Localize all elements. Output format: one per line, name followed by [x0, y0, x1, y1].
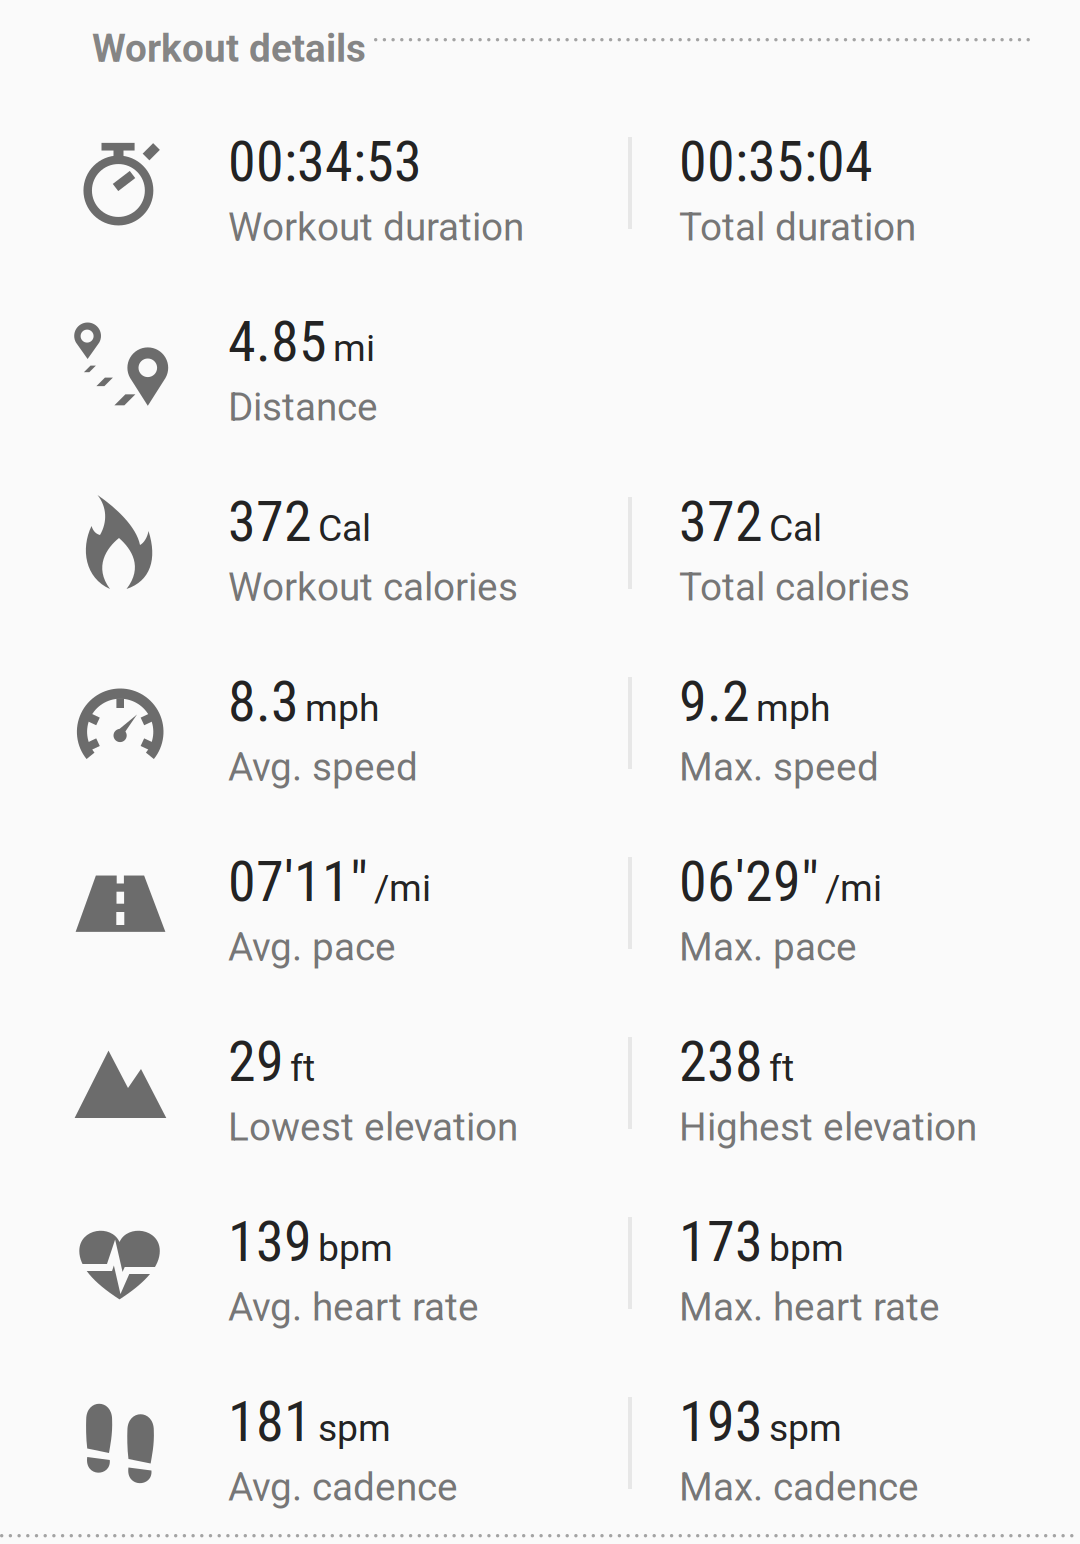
button[interactable]: 372: [0, 0, 518, 610]
staticText: Max. cadence: [679, 1465, 919, 1510]
staticText: 00:35:04: [679, 129, 873, 195]
staticText: 238: [679, 1029, 763, 1095]
staticText: 372: [228, 489, 312, 555]
staticText: 29: [228, 1029, 284, 1095]
staticText: ft: [290, 1046, 315, 1090]
staticText: bpm: [318, 1226, 393, 1270]
staticText: Cal: [769, 506, 822, 550]
button[interactable]: 193: [0, 0, 919, 1510]
button[interactable]: 29: [0, 0, 518, 1150]
button[interactable]: 181: [0, 0, 458, 1510]
button[interactable]: 06'29": [0, 0, 882, 970]
staticText: Avg. cadence: [228, 1465, 458, 1510]
button[interactable]: 238: [0, 0, 977, 1150]
staticText: mi: [333, 326, 375, 370]
staticText: Total calories: [679, 565, 910, 610]
button[interactable]: 173: [0, 0, 940, 1330]
staticText: Max. speed: [679, 745, 879, 790]
button[interactable]: 00:35:04: [0, 0, 916, 250]
staticText: 00:34:53: [228, 129, 422, 195]
staticText: 4.85: [228, 309, 327, 375]
staticText: Max. pace: [679, 925, 857, 970]
staticText: Avg. pace: [228, 925, 396, 970]
staticText: Avg. heart rate: [228, 1285, 479, 1330]
staticText: Workout calories: [228, 565, 518, 610]
staticText: Distance: [228, 385, 378, 430]
button[interactable]: 4.85: [0, 0, 378, 430]
staticText: 07'11": [228, 849, 368, 915]
button[interactable]: 9.2: [0, 0, 879, 790]
staticText: Workout details: [92, 26, 366, 71]
staticText: Cal: [318, 506, 371, 550]
button[interactable]: 8.3: [0, 0, 418, 790]
staticText: spm: [318, 1406, 391, 1450]
staticText: 8.3: [228, 669, 299, 735]
button[interactable]: 372: [0, 0, 910, 610]
button[interactable]: 139: [0, 0, 479, 1330]
staticText: 193: [679, 1389, 763, 1455]
staticText: Avg. speed: [228, 745, 418, 790]
staticText: mph: [305, 686, 380, 730]
staticText: Total duration: [679, 205, 916, 250]
staticText: spm: [769, 1406, 842, 1450]
button[interactable]: 07'11": [0, 0, 431, 970]
staticText: 9.2: [679, 669, 750, 735]
staticText: 181: [228, 1389, 312, 1455]
staticText: 06'29": [679, 849, 819, 915]
staticText: bpm: [769, 1226, 844, 1270]
staticText: Highest elevation: [679, 1105, 977, 1150]
staticText: ft: [769, 1046, 794, 1090]
staticText: 372: [679, 489, 763, 555]
staticText: /mi: [825, 866, 882, 910]
staticText: /mi: [374, 866, 431, 910]
staticText: mph: [756, 686, 831, 730]
staticText: Lowest elevation: [228, 1105, 518, 1150]
staticText: Max. heart rate: [679, 1285, 940, 1330]
staticText: Workout duration: [228, 205, 524, 250]
staticText: 173: [679, 1209, 763, 1275]
staticText: 139: [228, 1209, 312, 1275]
button[interactable]: 00:34:53: [0, 0, 524, 250]
